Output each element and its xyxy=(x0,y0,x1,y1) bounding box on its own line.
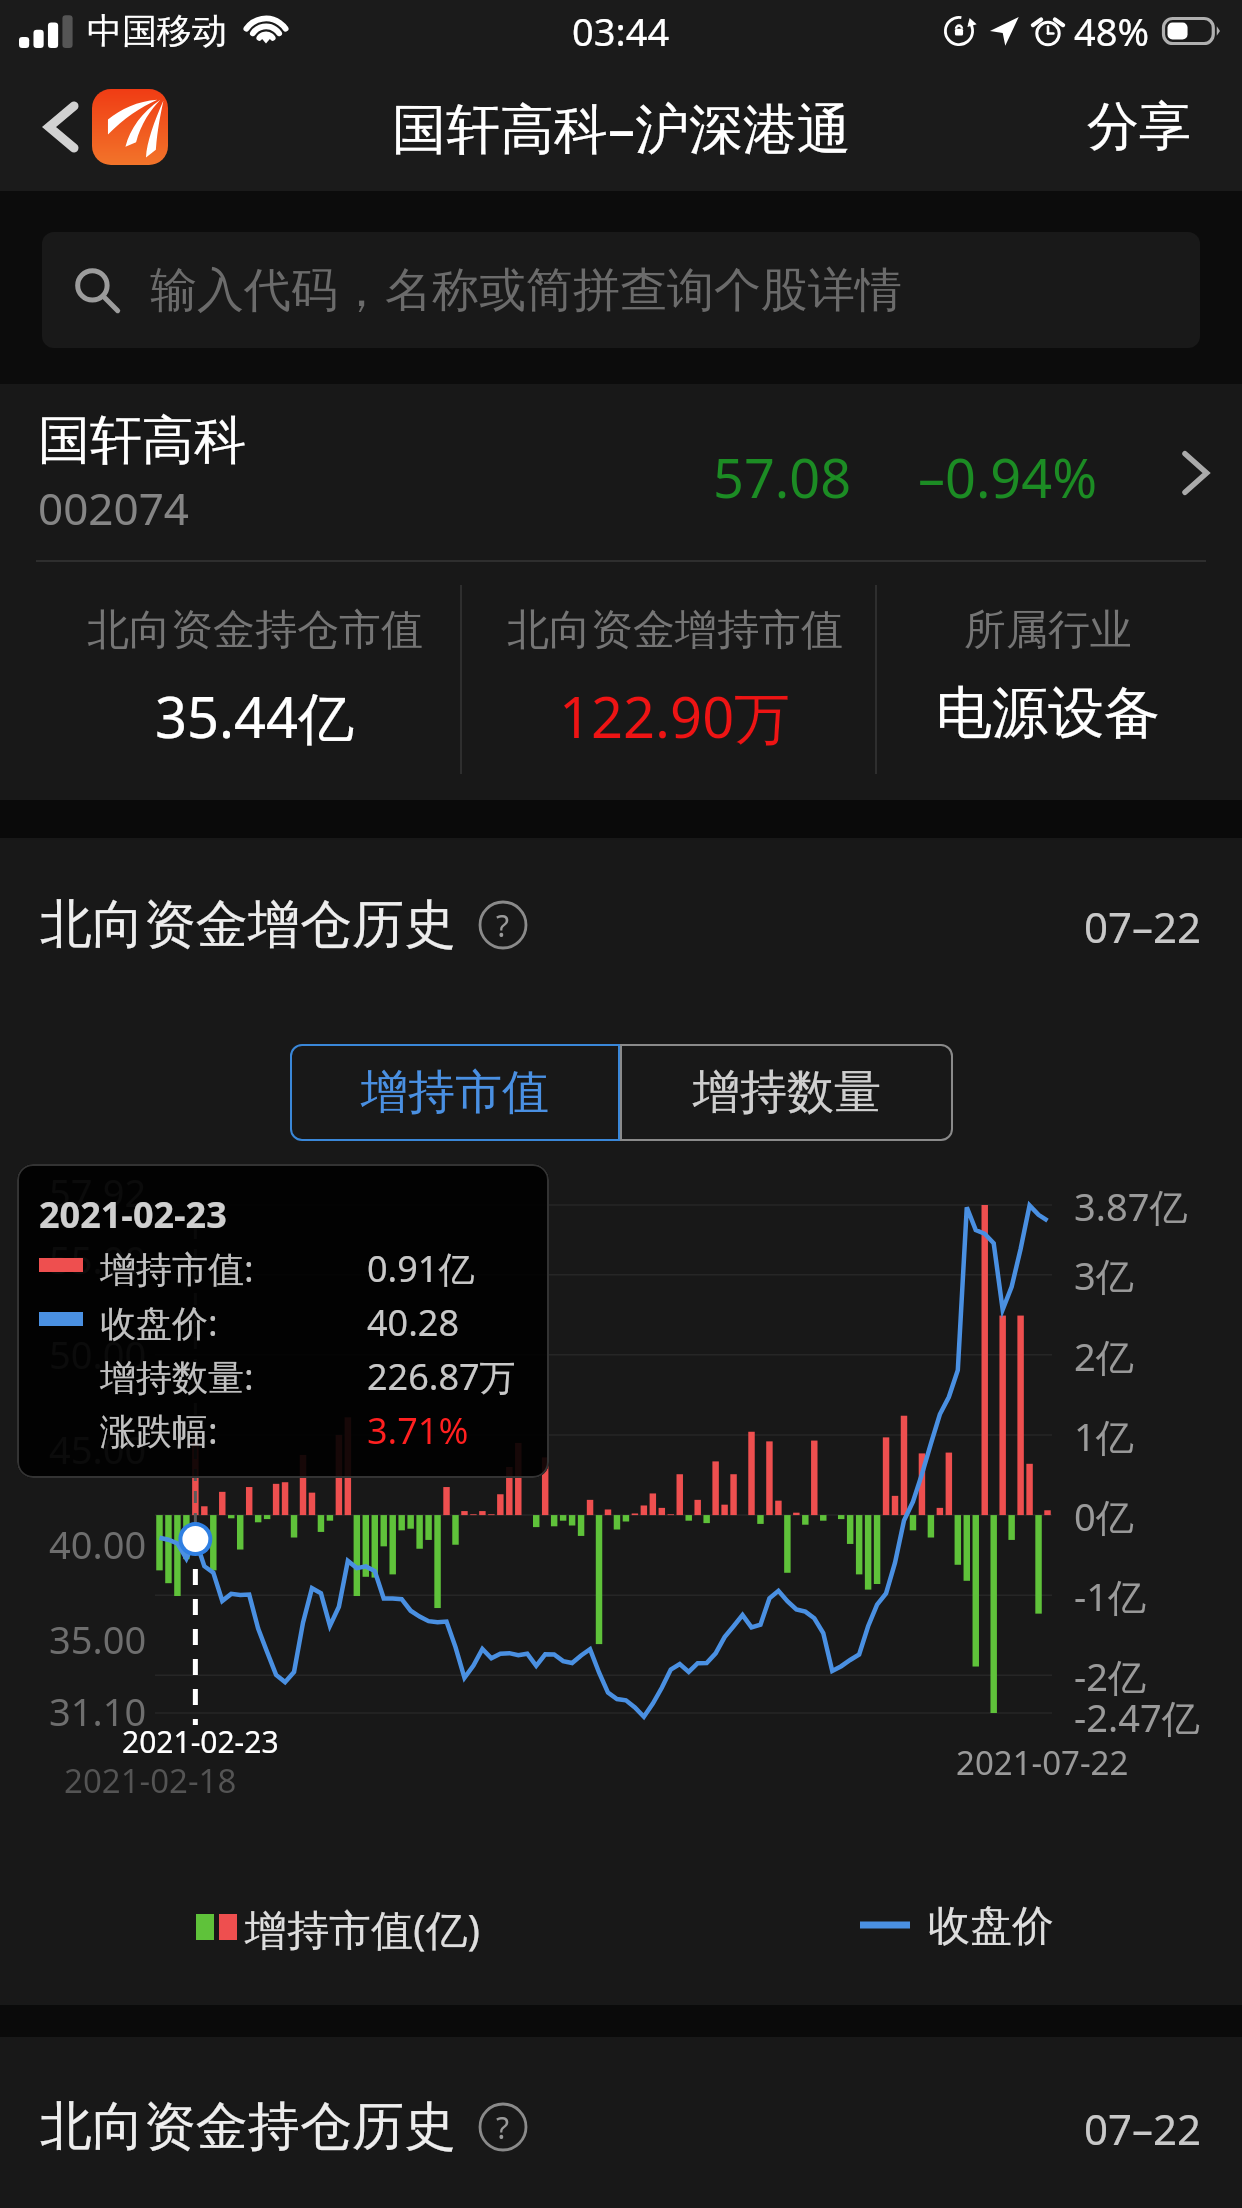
staticText: ? xyxy=(496,2107,510,2148)
staticText: 2021-02-18 xyxy=(64,1758,237,1803)
staticText: 40.00 xyxy=(49,1518,147,1570)
staticText: 增持数量: xyxy=(100,1352,254,1401)
staticText: 2亿 xyxy=(1074,1330,1134,1382)
staticText: 55.00 xyxy=(49,1233,147,1285)
staticText: 增持数量 xyxy=(693,1063,881,1122)
staticText: 国轩高科 xyxy=(38,408,246,474)
staticText: ? xyxy=(496,905,510,946)
staticText: 07–22 xyxy=(1084,2100,1202,2157)
staticText: 226.87万 xyxy=(367,1352,516,1401)
staticText: 北向资金增持市值 xyxy=(507,604,843,657)
button[interactable]: 北向资金增持市值 xyxy=(467,556,882,794)
staticText: 收盘价: xyxy=(100,1298,218,1347)
other: Open stock detail xyxy=(1182,450,1212,496)
staticText: 35.00 xyxy=(49,1613,147,1665)
staticText: 48% xyxy=(1074,5,1150,57)
button[interactable]: 所属行业 xyxy=(882,556,1213,794)
button[interactable]: 分享 xyxy=(1081,84,1197,170)
staticText: 增持市值: xyxy=(100,1244,254,1293)
staticText: 涨跌幅: xyxy=(100,1406,218,1455)
staticText: 北向资金增仓历史 xyxy=(40,892,456,958)
staticText: 增持市值 xyxy=(361,1063,549,1122)
staticText: 40.28 xyxy=(367,1298,460,1347)
staticText: 国轩高科–沪深港通 xyxy=(392,90,851,164)
staticText: 35.44亿 xyxy=(155,678,355,754)
button[interactable]: 增持数量 xyxy=(620,1044,953,1141)
staticText: 2021-02-23 xyxy=(122,1721,279,1762)
staticText: -1亿 xyxy=(1074,1570,1146,1622)
staticText: 07–22 xyxy=(1084,898,1202,955)
staticText: 1亿 xyxy=(1074,1410,1134,1462)
staticText: 电源设备 xyxy=(936,678,1160,749)
staticText: 03:44 xyxy=(572,5,670,57)
staticText: 3.87亿 xyxy=(1074,1180,1188,1232)
staticText: 57.08 xyxy=(713,440,852,514)
button[interactable]: 输入代码，名称或简拼查询个股详情 xyxy=(42,232,1200,348)
staticText: 北向资金持仓市值 xyxy=(87,604,423,657)
staticText: 收盘价 xyxy=(928,1900,1054,1953)
staticText: 中国移动 xyxy=(87,9,227,53)
staticText: 0.91亿 xyxy=(367,1244,475,1293)
staticText: 分享 xyxy=(1087,94,1191,160)
staticText: 所属行业 xyxy=(964,604,1132,657)
staticText: 3亿 xyxy=(1074,1249,1134,1301)
staticText: 输入代码，名称或简拼查询个股详情 xyxy=(150,261,902,320)
staticText: -2亿 xyxy=(1074,1650,1146,1702)
button[interactable]: Help xyxy=(478,2102,528,2152)
staticText: 45.00 xyxy=(49,1423,147,1475)
button[interactable]: Help xyxy=(478,900,528,950)
staticText: 3.71% xyxy=(367,1406,469,1455)
staticText: 002074 xyxy=(38,478,190,538)
button[interactable]: 国轩高科 xyxy=(0,384,1242,560)
staticText: 2021-02-23 xyxy=(39,1190,227,1239)
staticText: -2.47亿 xyxy=(1074,1691,1200,1743)
staticText: 0亿 xyxy=(1074,1490,1134,1542)
staticText: 31.10 xyxy=(49,1685,147,1737)
staticText: 122.90万 xyxy=(559,678,791,754)
staticText: –0.94% xyxy=(918,440,1098,514)
button[interactable]: 北向资金持仓市值 xyxy=(43,556,467,794)
button[interactable]: Back xyxy=(26,91,98,163)
button[interactable]: App icon xyxy=(92,89,168,165)
button[interactable]: 增持市值 xyxy=(290,1044,620,1141)
staticText: 2021-07-22 xyxy=(956,1740,1129,1785)
staticText: 增持市值(亿) xyxy=(245,1900,481,1957)
staticText: 57.92 xyxy=(49,1166,147,1218)
staticText: 北向资金持仓历史 xyxy=(40,2094,456,2160)
staticText: 50.00 xyxy=(49,1328,147,1380)
